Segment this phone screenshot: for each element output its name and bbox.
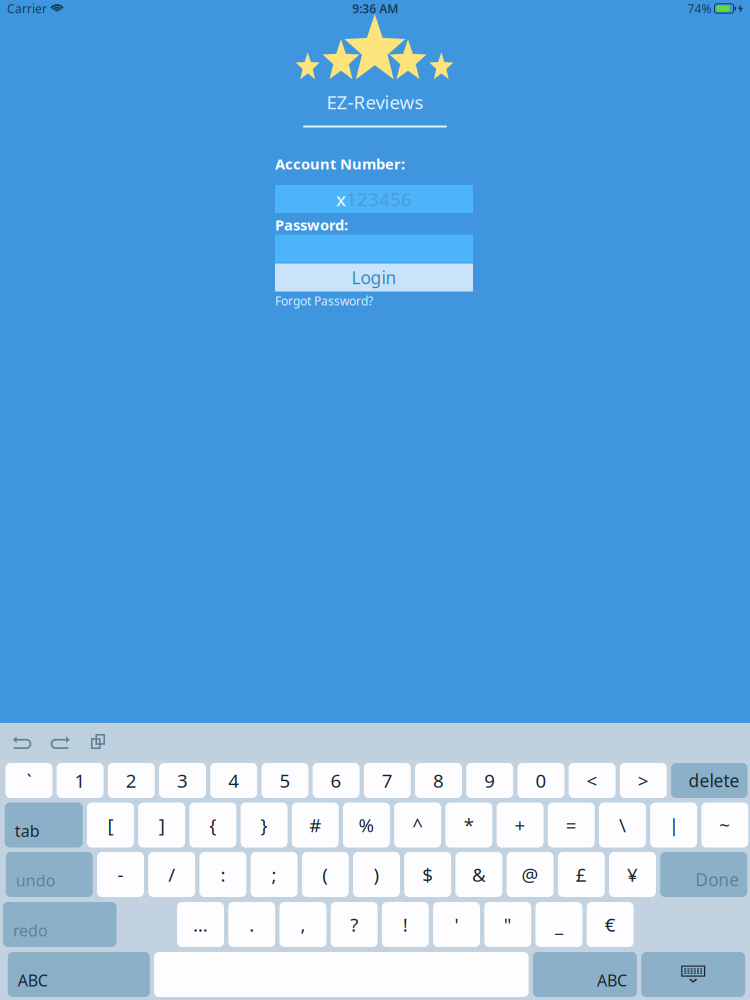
button[interactable]: ! [382, 902, 429, 947]
button[interactable]: Hide keyboard [641, 952, 745, 997]
button[interactable]: $ [404, 852, 451, 897]
staticText: > [638, 768, 649, 793]
staticText: ] [159, 813, 165, 837]
staticText: + [515, 813, 526, 837]
button[interactable]: 8 [415, 763, 462, 798]
button[interactable]: { [189, 802, 236, 847]
button[interactable]: 1 [57, 763, 104, 798]
button[interactable]: tab [5, 802, 83, 847]
button[interactable]: ¥ [609, 852, 656, 897]
button[interactable]: ) [353, 852, 400, 897]
staticText: | [669, 813, 679, 837]
button[interactable]: ` [5, 763, 52, 798]
staticText: . [249, 912, 254, 937]
button[interactable]: … [177, 902, 224, 947]
button[interactable]: | [650, 802, 697, 847]
staticText: ! [403, 912, 408, 937]
button[interactable]: 9 [466, 763, 513, 798]
button[interactable]: Redo [41, 726, 79, 756]
button[interactable]: 3 [159, 763, 206, 798]
button[interactable]: - [97, 852, 144, 897]
button[interactable]: Undo [3, 726, 41, 756]
staticText: 3 [177, 768, 188, 793]
button[interactable]: = [548, 802, 595, 847]
button[interactable]: Forgot Password? [275, 293, 373, 309]
staticText: Forgot Password? [275, 293, 373, 309]
button[interactable]: ( [302, 852, 349, 897]
staticText: < [587, 768, 598, 793]
staticText: 8 [433, 768, 444, 793]
staticText: * [464, 813, 474, 837]
staticText: ¥ [627, 862, 638, 887]
button[interactable]: undo [6, 852, 93, 897]
button[interactable]: _ [535, 902, 582, 947]
button[interactable]: : [199, 852, 246, 897]
button[interactable]: Login [275, 263, 473, 291]
button[interactable]: Done [660, 852, 747, 897]
staticText: 7 [382, 768, 393, 793]
button[interactable]: ' [433, 902, 480, 947]
button[interactable]: " [484, 902, 531, 947]
staticText: ' [454, 912, 458, 937]
button[interactable]: . [228, 902, 275, 947]
button[interactable]: ] [138, 802, 185, 847]
button[interactable]: @ [507, 852, 553, 897]
button[interactable]: \ [599, 802, 646, 847]
button[interactable]: 5 [261, 763, 308, 798]
button[interactable]: x [275, 185, 473, 213]
staticText: Account Number: [275, 154, 405, 173]
button[interactable]: < [569, 763, 616, 798]
staticText: ~ [719, 813, 730, 837]
button[interactable]: # [292, 802, 339, 847]
button[interactable]: & [455, 852, 502, 897]
button[interactable]: € [587, 902, 634, 947]
button[interactable]: £ [558, 852, 605, 897]
staticText: / [168, 862, 175, 887]
button[interactable]: 2 [108, 763, 155, 798]
staticText: : [220, 862, 225, 887]
button[interactable]: ^ [394, 802, 441, 847]
staticText: 123456 [346, 187, 412, 211]
button[interactable]: ~ [701, 802, 748, 847]
button[interactable]: 4 [210, 763, 257, 798]
staticText: 5 [279, 768, 290, 793]
staticText: # [309, 813, 321, 837]
button[interactable]: > [620, 763, 667, 798]
button[interactable]: redo [3, 902, 116, 947]
button[interactable]: ABC [8, 952, 150, 997]
staticText: £ [576, 862, 587, 887]
staticText: 4 [228, 768, 239, 793]
button[interactable]: / [148, 852, 195, 897]
staticText: " [504, 912, 512, 937]
button[interactable]: delete [671, 763, 748, 798]
staticText: ^ [412, 813, 423, 837]
staticText: - [117, 862, 123, 887]
staticText: ? [350, 912, 358, 937]
button[interactable]: , [279, 902, 326, 947]
staticText: redo [13, 920, 48, 941]
button[interactable]: Paste [79, 726, 117, 756]
button[interactable]: [ [87, 802, 134, 847]
staticText: & [472, 862, 486, 887]
staticText: = [566, 813, 577, 837]
button[interactable]: ABC [533, 952, 637, 997]
button[interactable]: % [343, 802, 390, 847]
button[interactable]: * [445, 802, 492, 847]
staticText: % [358, 813, 374, 837]
button[interactable]: 7 [364, 763, 411, 798]
staticText: ABC [18, 970, 48, 991]
staticText: Login [351, 266, 396, 289]
button[interactable]: 6 [313, 763, 360, 798]
button[interactable]: 0 [517, 763, 564, 798]
staticText: EZ-Reviews [326, 89, 423, 114]
button[interactable]: ? [331, 902, 378, 947]
staticText: ` [26, 768, 31, 793]
staticText: x [336, 187, 346, 211]
button[interactable]: ; [251, 852, 298, 897]
button[interactable]: } [241, 802, 287, 847]
staticText: 2 [126, 768, 137, 793]
button[interactable]: + [497, 802, 543, 847]
staticText: Carrier [7, 0, 47, 16]
